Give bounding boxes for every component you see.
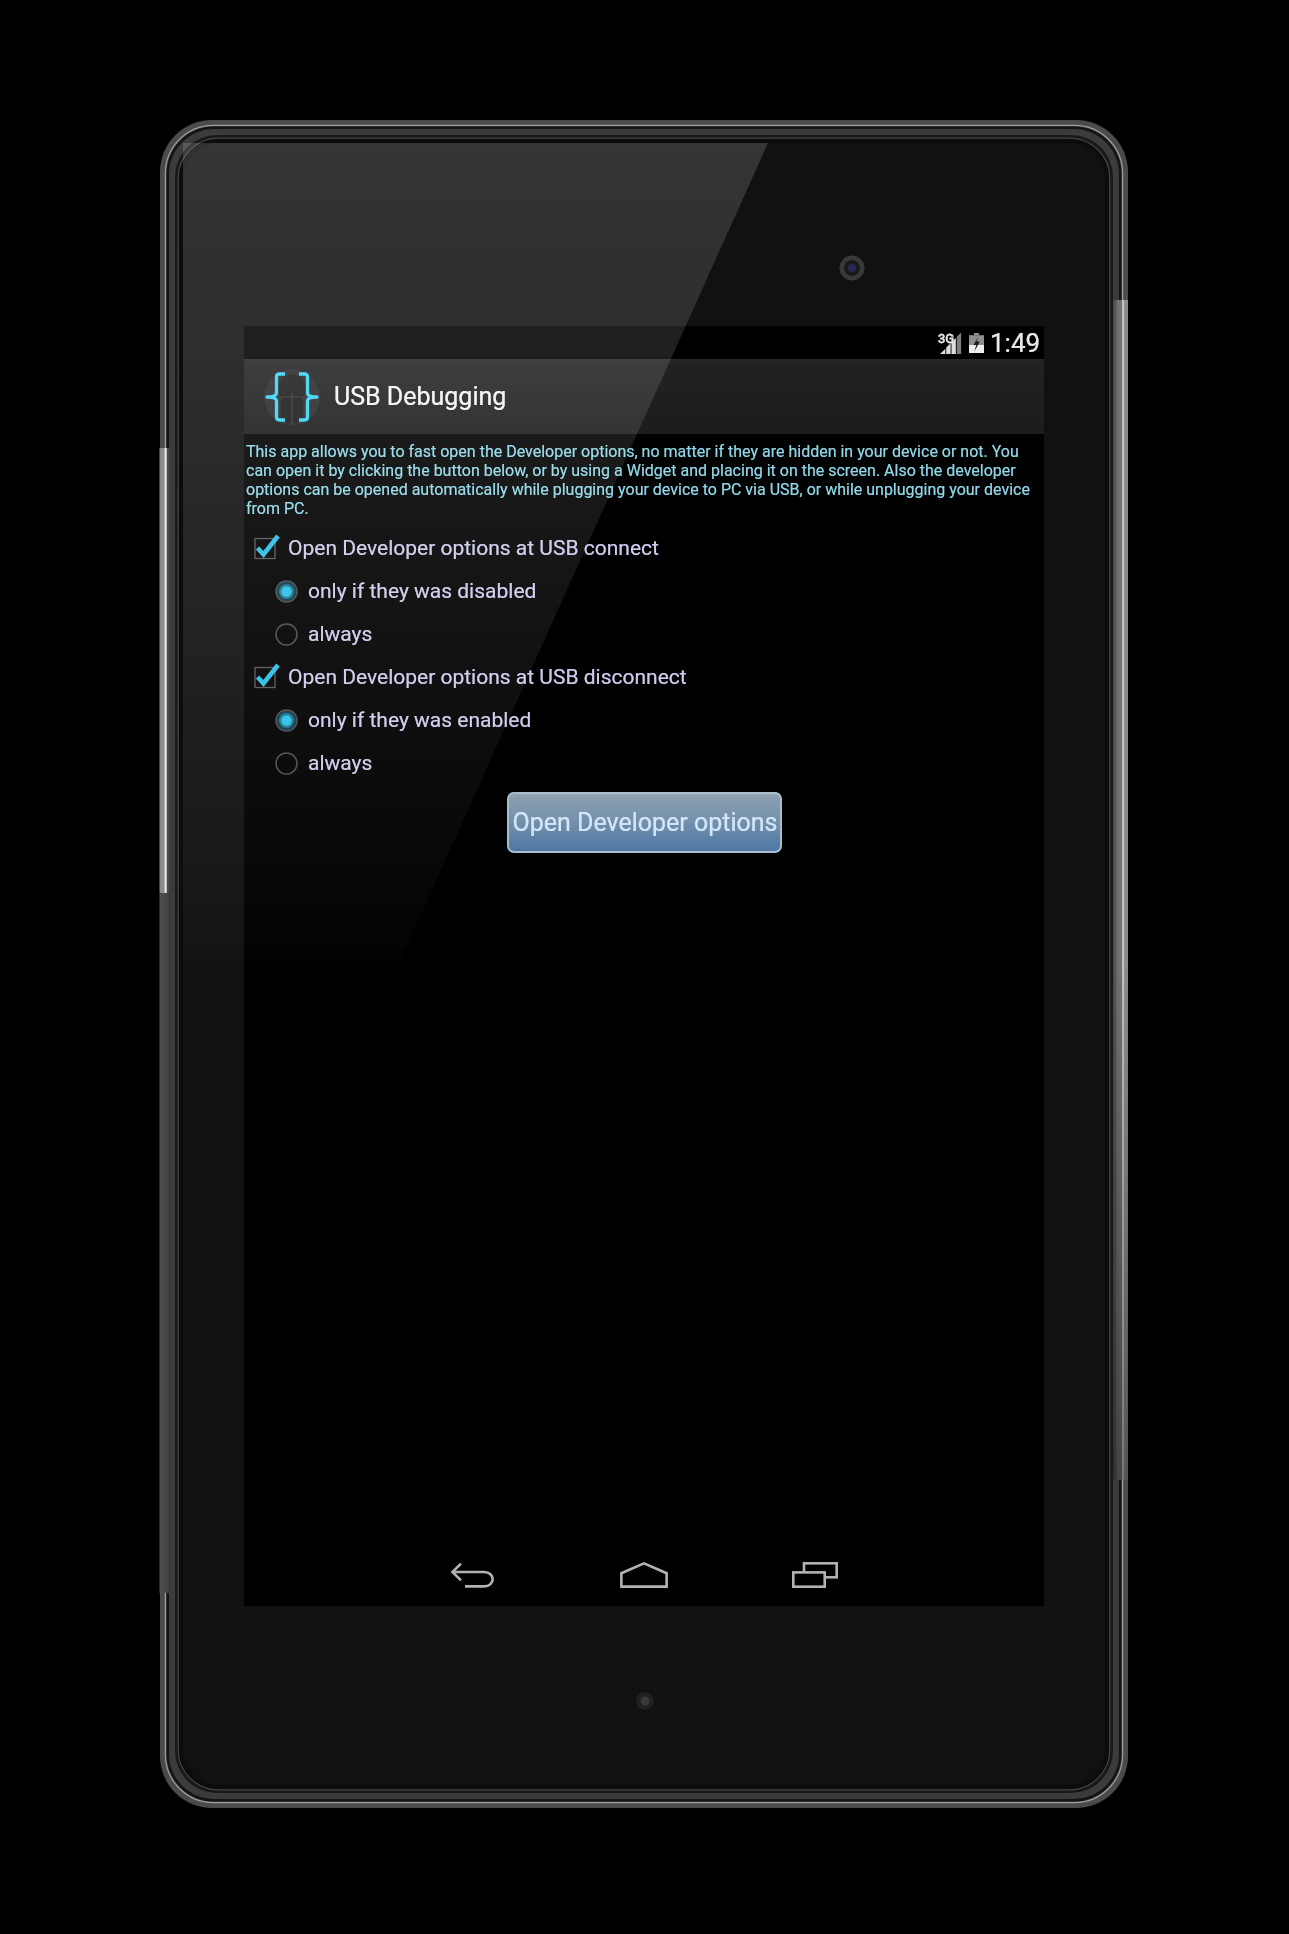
- staticText: Open Developer options: [512, 808, 778, 837]
- staticText: Open Developer options at USB disconnect: [288, 665, 687, 690]
- staticText: always: [308, 622, 373, 647]
- button[interactable]: Recents: [770, 1530, 860, 1606]
- staticText: only if they was disabled: [308, 579, 537, 604]
- button[interactable]: only if they was enabled: [244, 699, 1044, 742]
- staticText: USB Debugging: [334, 382, 507, 411]
- button[interactable]: always: [244, 742, 1044, 785]
- button[interactable]: Home: [599, 1530, 689, 1606]
- button[interactable]: Open Developer options at USB disconnect: [244, 656, 1044, 699]
- button[interactable]: Open Developer options at USB connect: [244, 527, 1044, 570]
- staticText: always: [308, 751, 373, 776]
- staticText: This app allows you to fast open the Dev…: [246, 442, 1042, 518]
- button[interactable]: only if they was disabled: [244, 570, 1044, 613]
- staticText: 1:49: [990, 328, 1041, 358]
- staticText: only if they was enabled: [308, 708, 532, 733]
- button[interactable]: Back: [428, 1530, 518, 1606]
- staticText: Open Developer options at USB connect: [288, 536, 659, 561]
- button[interactable]: Open Developer options: [507, 792, 782, 853]
- button[interactable]: always: [244, 613, 1044, 656]
- staticText: 3G: [938, 331, 955, 346]
